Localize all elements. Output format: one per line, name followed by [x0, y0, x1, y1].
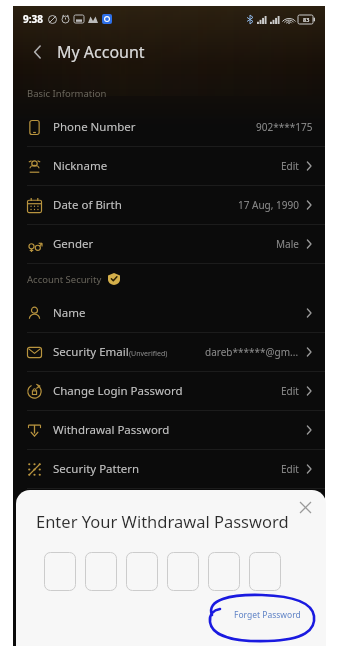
button[interactable]: Name: [13, 294, 325, 333]
staticText: Security Email: [53, 344, 129, 360]
button[interactable]: [167, 552, 199, 591]
button[interactable]: Security Email: [13, 333, 325, 372]
staticText: Security Pattern: [53, 461, 140, 477]
staticText: dareb******@gm...: [205, 345, 299, 359]
staticText: Basic Information: [27, 87, 107, 100]
button[interactable]: [208, 552, 240, 591]
staticText: Account Security: [27, 273, 102, 286]
staticText: 9:38: [23, 12, 43, 26]
staticText: My Account: [57, 41, 145, 63]
staticText: Name: [53, 305, 86, 321]
staticText: Edit: [281, 159, 299, 173]
staticText: 902****175: [256, 120, 313, 134]
staticText: Change Login Password: [53, 383, 183, 399]
button[interactable]: Back: [23, 37, 53, 67]
button[interactable]: Forget Password: [234, 609, 301, 621]
button[interactable]: [44, 552, 76, 591]
staticText: Enter Your Withdrawal Password: [36, 510, 289, 532]
button[interactable]: Phone Number: [13, 108, 325, 147]
staticText: Date of Birth: [53, 197, 122, 213]
button[interactable]: Withdrawal Password: [13, 411, 325, 450]
button[interactable]: Security Pattern: [13, 450, 325, 489]
staticText: 17 Aug, 1990: [238, 198, 299, 212]
staticText: Edit: [281, 384, 299, 398]
button[interactable]: Gender: [13, 225, 325, 264]
button[interactable]: Close: [292, 494, 318, 520]
staticText: Edit: [281, 462, 299, 476]
button[interactable]: [85, 552, 117, 591]
button[interactable]: Change Login Password: [13, 372, 325, 411]
staticText: Nickname: [53, 158, 108, 174]
staticText: Gender: [53, 236, 94, 252]
button[interactable]: [249, 552, 281, 591]
staticText: Male: [276, 237, 299, 251]
button[interactable]: Nickname: [13, 147, 325, 186]
staticText: Phone Number: [53, 119, 136, 135]
button[interactable]: Date of Birth: [13, 186, 325, 225]
button[interactable]: [126, 552, 158, 591]
staticText: Withdrawal Password: [53, 422, 170, 438]
staticText: 83: [303, 16, 310, 23]
staticText: (Unverified): [129, 349, 168, 359]
